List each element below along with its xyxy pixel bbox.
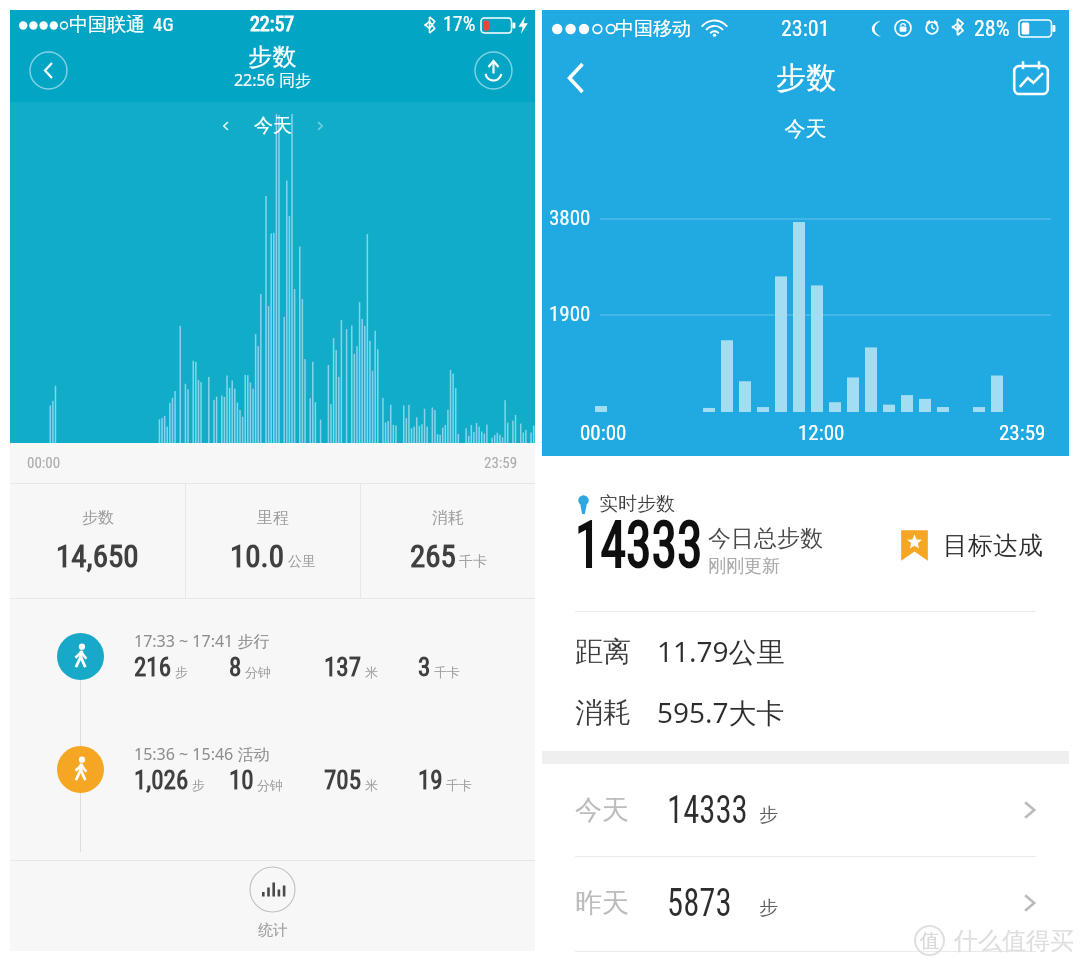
- staticText: 23:59: [999, 421, 1046, 446]
- staticText: 19: [418, 766, 443, 795]
- staticText: 14333: [575, 507, 703, 583]
- staticText: 距离: [575, 634, 631, 669]
- staticText: 今天: [254, 114, 292, 138]
- staticText: 中国移动: [615, 17, 691, 41]
- button[interactable]: 消耗: [361, 484, 535, 598]
- staticText: 步: [759, 803, 778, 827]
- staticText: 00:00: [580, 421, 627, 446]
- staticText: 千卡: [459, 553, 487, 571]
- staticText: 米: [365, 777, 378, 793]
- staticText: 刚刚更新: [708, 555, 780, 578]
- staticText: 千卡: [434, 664, 460, 680]
- button[interactable]: 15:36 ~ 15:46 活动: [10, 736, 535, 802]
- staticText: 22:56 同步: [10, 69, 535, 91]
- staticText: 米: [365, 664, 378, 680]
- staticText: 分钟: [257, 777, 283, 793]
- staticText: 昨天: [575, 886, 629, 920]
- staticText: 步: [759, 896, 778, 920]
- staticText: 14,650: [56, 538, 139, 574]
- staticText: 值: [920, 929, 939, 953]
- staticText: 22:57: [250, 12, 295, 35]
- staticText: 12:00: [798, 421, 845, 446]
- staticText: 3: [418, 653, 431, 682]
- staticText: 千卡: [446, 777, 472, 793]
- staticText: 统计: [258, 921, 288, 940]
- staticText: 4G: [153, 13, 174, 35]
- staticText: 分钟: [245, 664, 271, 680]
- button[interactable]: 今天: [542, 764, 1069, 856]
- staticText: 公里: [288, 553, 316, 571]
- staticText: 步数: [776, 59, 836, 97]
- staticText: 15:36 ~ 15:46 活动: [134, 743, 270, 765]
- button[interactable]: 昨天: [542, 857, 1069, 949]
- staticText: 23:01: [781, 16, 830, 42]
- staticText: 8: [229, 653, 242, 682]
- staticText: 步: [192, 777, 205, 793]
- staticText: 137: [324, 653, 362, 682]
- staticText: 消耗: [432, 508, 464, 528]
- staticText: 步: [175, 664, 188, 680]
- staticText: 1900: [549, 302, 591, 327]
- button[interactable]: 目标达成: [900, 529, 1043, 562]
- staticText: 705: [324, 766, 362, 795]
- staticText: 步数: [10, 42, 535, 72]
- staticText: 17%: [443, 12, 476, 35]
- staticText: 14333: [667, 788, 748, 833]
- button[interactable]: Back: [29, 51, 68, 90]
- staticText: 里程: [257, 508, 289, 528]
- staticText: 实时步数: [599, 492, 675, 516]
- staticText: 5873: [667, 881, 732, 926]
- button[interactable]: Sync: [474, 51, 513, 90]
- button[interactable]: History: [1011, 58, 1051, 98]
- staticText: 28%: [974, 16, 1010, 42]
- staticText: 步数: [82, 508, 114, 528]
- staticText: 595.7大卡: [657, 693, 785, 731]
- button[interactable]: 17:33 ~ 17:41 步行: [10, 623, 535, 689]
- staticText: 11.79公里: [657, 632, 785, 670]
- staticText: 3800: [549, 206, 591, 231]
- staticText: 今天: [542, 116, 1069, 142]
- staticText: 265: [410, 538, 456, 574]
- staticText: 1,026: [134, 766, 189, 795]
- button[interactable]: 统计: [249, 866, 296, 940]
- staticText: 消耗: [575, 695, 631, 730]
- staticText: 10.0: [230, 538, 285, 574]
- staticText: 00:00: [27, 454, 61, 472]
- staticText: 23:59: [484, 454, 518, 472]
- staticText: 17:33 ~ 17:41 步行: [134, 630, 270, 652]
- button[interactable]: 里程: [186, 484, 360, 598]
- staticText: 什么值得买: [954, 926, 1074, 956]
- button[interactable]: 步数: [10, 484, 185, 598]
- staticText: 今日总步数: [708, 524, 823, 553]
- staticText: 今天: [575, 793, 629, 827]
- staticText: 中国联通: [69, 13, 145, 37]
- staticText: 目标达成: [943, 530, 1043, 561]
- staticText: 10: [229, 766, 254, 795]
- staticText: 216: [134, 653, 172, 682]
- button[interactable]: Back: [554, 56, 598, 100]
